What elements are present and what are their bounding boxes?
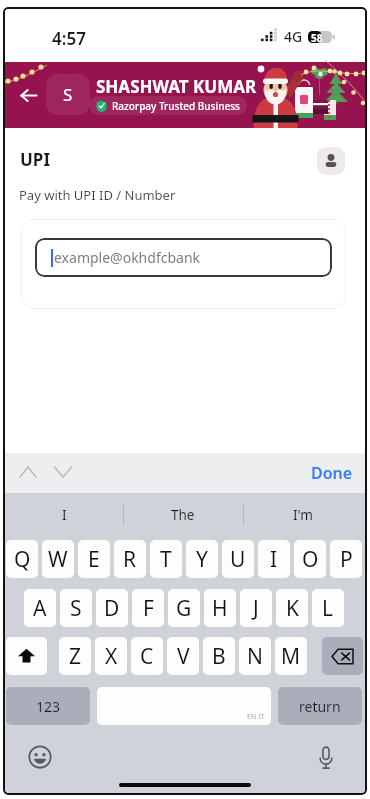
button[interactable]: example@okhdfcbank bbox=[35, 238, 332, 277]
staticText: X bbox=[105, 642, 118, 671]
staticText: F bbox=[143, 594, 154, 623]
staticText: 4:57 bbox=[52, 27, 86, 50]
button[interactable]: Backspace bbox=[322, 637, 363, 675]
staticText: I'm bbox=[293, 506, 313, 524]
staticText: Z bbox=[69, 642, 82, 671]
button[interactable]: I bbox=[258, 540, 290, 578]
staticText: M bbox=[281, 642, 301, 671]
button[interactable]: G bbox=[168, 589, 200, 627]
staticText: J bbox=[253, 594, 259, 623]
button[interactable]: F bbox=[132, 589, 164, 627]
staticText: UPI bbox=[20, 148, 51, 171]
staticText: 58 bbox=[311, 31, 323, 43]
staticText: A bbox=[33, 594, 47, 623]
staticText: S bbox=[63, 83, 73, 106]
button[interactable]: Shift bbox=[6, 637, 47, 675]
staticText: D bbox=[104, 594, 120, 623]
staticText: Y bbox=[196, 545, 208, 574]
staticText: Razorpay Trusted Business bbox=[112, 99, 240, 113]
button[interactable]: V bbox=[167, 637, 199, 675]
button[interactable]: I bbox=[5, 496, 123, 534]
staticText: example@okhdfcbank bbox=[54, 248, 201, 267]
button[interactable]: L bbox=[312, 589, 344, 627]
button[interactable]: N bbox=[239, 637, 271, 675]
staticText: K bbox=[286, 594, 299, 623]
button[interactable]: E bbox=[78, 540, 110, 578]
button[interactable]: Back bbox=[14, 81, 42, 109]
staticText: EN IT bbox=[247, 712, 265, 722]
staticText: V bbox=[177, 642, 190, 671]
staticText: Done bbox=[311, 462, 353, 484]
staticText: The bbox=[171, 506, 195, 524]
staticText: G bbox=[176, 594, 192, 623]
button[interactable]: D bbox=[96, 589, 128, 627]
staticText: N bbox=[247, 642, 263, 671]
staticText: Pay with UPI ID / Number bbox=[19, 186, 176, 204]
button[interactable]: P bbox=[330, 540, 362, 578]
staticText: 4G bbox=[284, 27, 303, 46]
button[interactable]: R bbox=[114, 540, 146, 578]
staticText: E bbox=[88, 545, 100, 574]
staticText: B bbox=[212, 642, 226, 671]
button[interactable]: O bbox=[294, 540, 326, 578]
button[interactable]: K bbox=[276, 589, 308, 627]
button[interactable]: return bbox=[278, 687, 362, 725]
button[interactable]: Next field bbox=[49, 461, 77, 485]
button[interactable]: X bbox=[95, 637, 127, 675]
button[interactable]: Profile bbox=[317, 147, 345, 175]
button[interactable]: J bbox=[240, 589, 272, 627]
button[interactable]: W bbox=[42, 540, 74, 578]
button[interactable]: Previous field bbox=[14, 461, 42, 485]
staticText: T bbox=[160, 545, 172, 574]
button[interactable]: Emoji keyboard bbox=[28, 745, 52, 769]
staticText: P bbox=[340, 545, 353, 574]
button[interactable]: Space bbox=[97, 687, 271, 725]
staticText: 123 bbox=[36, 697, 61, 716]
button[interactable]: Q bbox=[6, 540, 38, 578]
button[interactable]: Done bbox=[311, 462, 353, 484]
button[interactable]: Dictation bbox=[317, 745, 335, 771]
button[interactable]: I'm bbox=[243, 496, 362, 534]
staticText: H bbox=[212, 594, 228, 623]
button[interactable]: T bbox=[150, 540, 182, 578]
staticText: S bbox=[70, 594, 82, 623]
staticText: R bbox=[123, 545, 137, 574]
button[interactable]: The bbox=[123, 496, 243, 534]
button[interactable]: B bbox=[203, 637, 235, 675]
button[interactable]: S bbox=[46, 74, 90, 115]
button[interactable]: 123 bbox=[6, 687, 90, 725]
staticText: I bbox=[270, 545, 278, 574]
button[interactable]: M bbox=[275, 637, 307, 675]
button[interactable]: A bbox=[24, 589, 56, 627]
staticText: Q bbox=[14, 545, 31, 574]
staticText: L bbox=[322, 594, 334, 623]
staticText: I bbox=[62, 506, 67, 524]
staticText: O bbox=[302, 545, 319, 574]
staticText: W bbox=[48, 545, 68, 574]
button[interactable]: H bbox=[204, 589, 236, 627]
button[interactable]: Z bbox=[59, 637, 91, 675]
staticText: return bbox=[299, 697, 341, 716]
button[interactable]: Y bbox=[186, 540, 218, 578]
staticText: C bbox=[140, 642, 154, 671]
button[interactable]: S bbox=[60, 589, 92, 627]
button[interactable]: C bbox=[131, 637, 163, 675]
staticText: U bbox=[230, 545, 246, 574]
staticText: SHASHWAT KUMAR bbox=[96, 75, 257, 98]
button[interactable]: U bbox=[222, 540, 254, 578]
